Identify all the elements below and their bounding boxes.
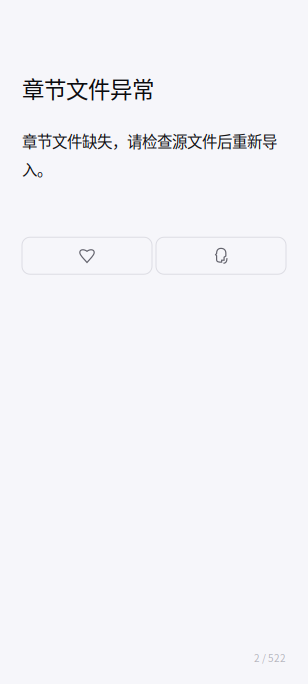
staticText: 章节文件异常	[22, 72, 154, 104]
button[interactable]: 评论	[156, 237, 286, 274]
staticText: 章节文件缺失，请检查源文件后重新导入。	[22, 129, 277, 180]
button[interactable]: 喜欢	[22, 237, 152, 274]
staticText: 2 / 522	[254, 650, 286, 665]
